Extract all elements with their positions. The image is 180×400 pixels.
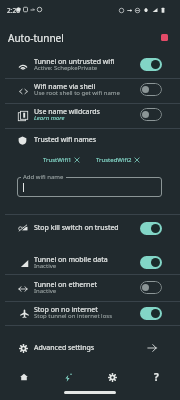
button[interactable]: Off bbox=[140, 83, 162, 96]
button[interactable]: Advanced settings bbox=[0, 325, 180, 370]
button[interactable]: Tunnel on untrusted wifi bbox=[0, 53, 180, 78]
button[interactable]: Off bbox=[140, 108, 162, 121]
staticText: Advanced settings bbox=[34, 343, 95, 353]
staticText: Tunnel on ethernet bbox=[34, 280, 97, 290]
staticText: Stop on no internet bbox=[34, 305, 98, 315]
staticText: Stop kill switch on trusted bbox=[34, 223, 119, 233]
button[interactable]: Off bbox=[140, 281, 162, 294]
staticText: Learn more bbox=[34, 114, 65, 122]
button[interactable]: On bbox=[140, 58, 162, 71]
button[interactable]: Auto tunnel bbox=[48, 368, 88, 386]
button[interactable]: Wifi name via shell bbox=[0, 78, 180, 103]
button[interactable]: Support bbox=[136, 368, 176, 386]
staticText: Add wifi name bbox=[23, 173, 64, 181]
button[interactable]: TrustedWifi2 bbox=[96, 156, 140, 164]
button[interactable]: Use name wildcards bbox=[0, 103, 180, 128]
button[interactable]: Tunnel on mobile data bbox=[0, 251, 180, 277]
button[interactable]: Stop on no internet bbox=[0, 301, 180, 327]
button[interactable]: TrustWifi1 bbox=[43, 156, 80, 164]
button[interactable]: Tunnel on ethernet bbox=[0, 276, 180, 302]
staticText: Auto-tunnel bbox=[8, 31, 64, 45]
button[interactable]: On bbox=[140, 256, 162, 269]
button[interactable]: Home bbox=[4, 368, 44, 386]
button[interactable]: On bbox=[140, 222, 162, 235]
staticText: Tunnel on untrusted wifi bbox=[34, 57, 115, 67]
staticText: Wifi name via shell bbox=[34, 82, 96, 92]
button[interactable]: Stop tunnel bbox=[156, 29, 172, 45]
staticText: Use name wildcards bbox=[34, 107, 100, 117]
staticText: ? bbox=[154, 370, 159, 384]
staticText: TrustWifi1 bbox=[43, 156, 72, 164]
button[interactable]: On bbox=[140, 307, 162, 320]
staticText: Inactive bbox=[34, 287, 57, 295]
staticText: Stop tunnel on internet loss bbox=[34, 312, 113, 320]
staticText: Use root shell to get wifi name bbox=[34, 89, 120, 97]
button[interactable]: Add wifi name bbox=[17, 177, 162, 197]
staticText: TrustedWifi2 bbox=[96, 156, 132, 164]
button[interactable]: Settings bbox=[92, 368, 132, 386]
staticText: 2:26 bbox=[7, 6, 20, 15]
staticText: Inactive bbox=[34, 262, 57, 270]
staticText: Trusted wifi names bbox=[34, 135, 97, 145]
staticText: Tunnel on mobile data bbox=[34, 255, 108, 265]
staticText: Active: SchepkePrivate bbox=[34, 64, 98, 72]
button[interactable]: Stop kill switch on trusted bbox=[0, 214, 180, 241]
